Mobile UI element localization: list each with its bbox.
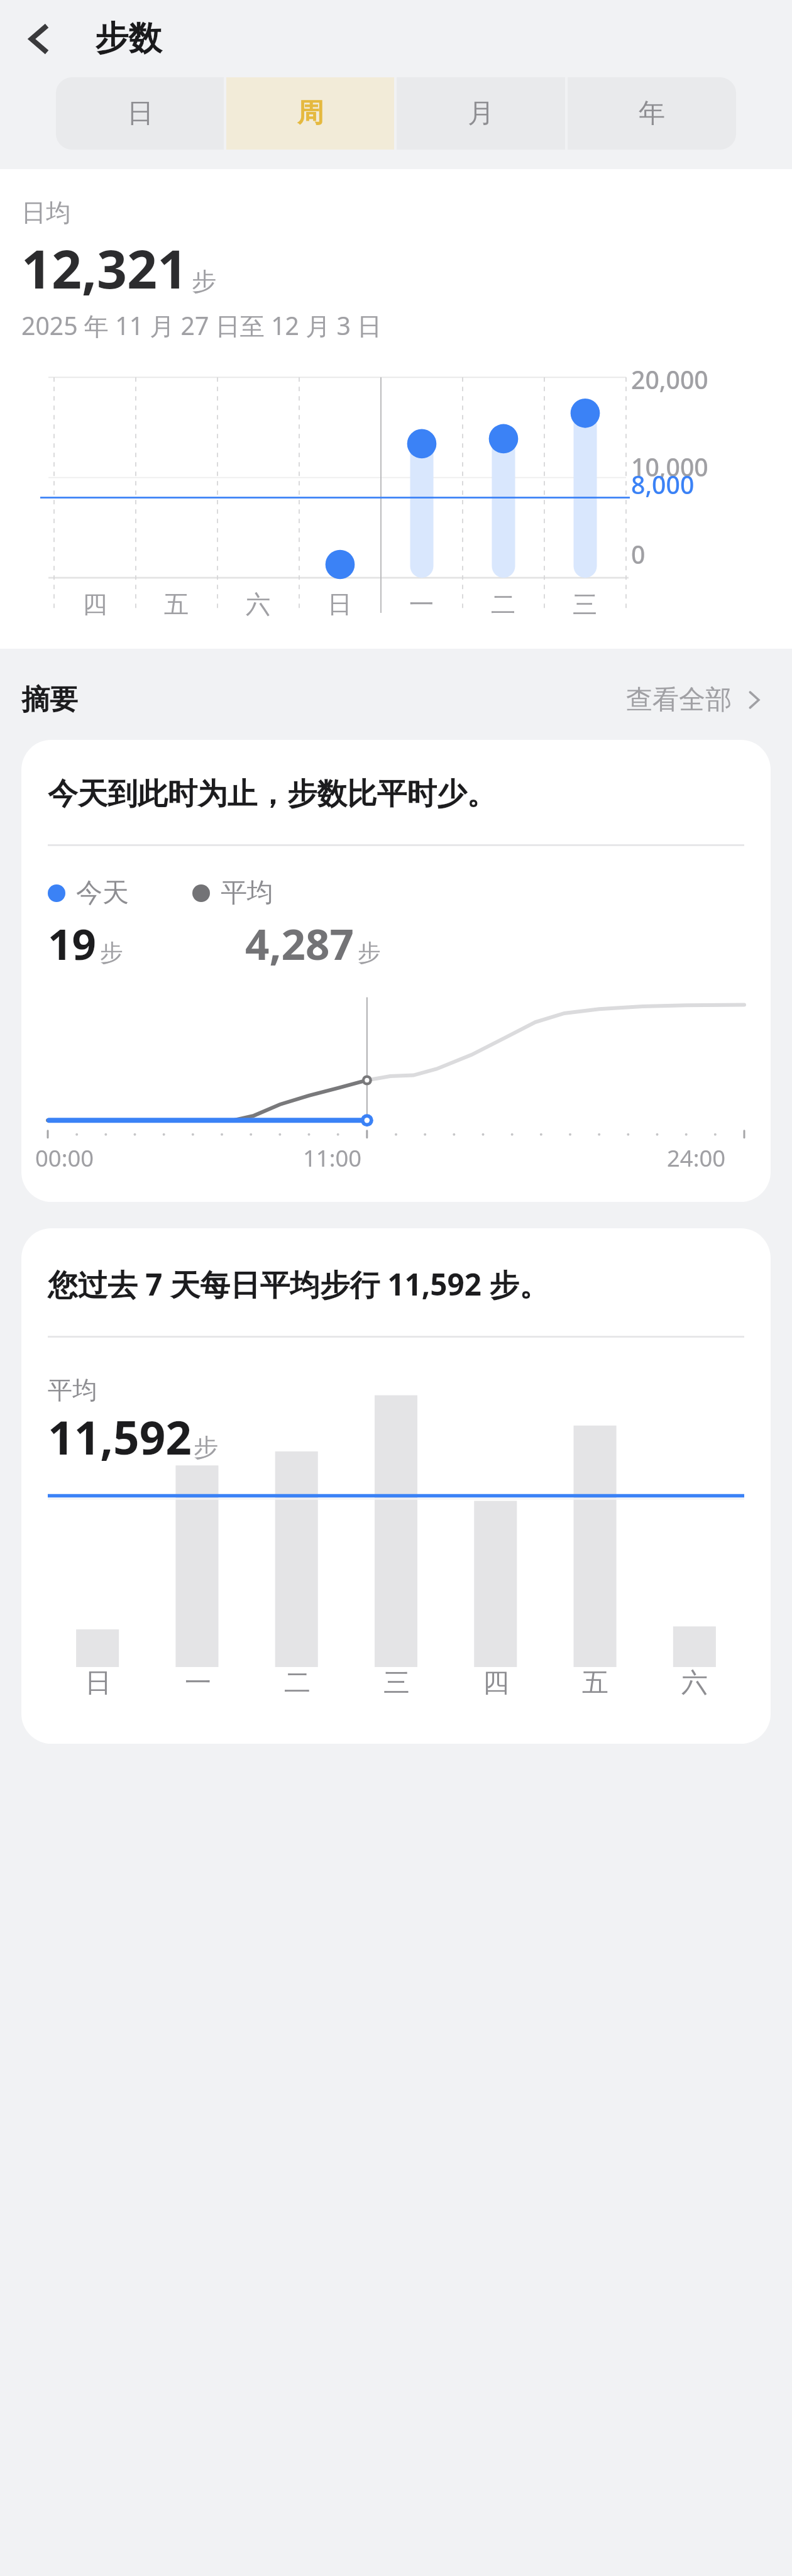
staticText: 二 (284, 1666, 311, 1700)
staticText: 摘要 (21, 682, 78, 717)
button[interactable]: Back (5, 4, 75, 74)
staticText: 19 (48, 915, 96, 972)
staticText: 五 (164, 589, 189, 620)
staticText: 4,287 (245, 915, 354, 972)
staticText: 日 (127, 97, 153, 130)
staticText: 步 (194, 1432, 219, 1463)
staticText: 四 (483, 1666, 509, 1700)
staticText: 步数 (95, 18, 162, 60)
button[interactable]: 日 (56, 77, 224, 150)
staticText: 步 (358, 938, 381, 967)
staticText: 步 (192, 266, 217, 297)
staticText: 日 (85, 1666, 111, 1700)
staticText: 10,000 (631, 450, 708, 483)
staticText: 日均 (21, 197, 71, 228)
staticText: 三 (383, 1666, 410, 1700)
staticText: 一 (185, 1666, 211, 1700)
staticText: 20,000 (631, 363, 708, 396)
button[interactable]: 周 (226, 77, 394, 150)
staticText: 六 (246, 589, 271, 620)
staticText: 8,000 (631, 468, 695, 501)
staticText: 11,592 (48, 1406, 192, 1468)
staticText: 24:00 (667, 1142, 726, 1174)
staticText: 11:00 (303, 1142, 362, 1174)
staticText: 年 (639, 97, 665, 130)
staticText: 您过去 7 天每日平均步行 11,592 步。 (48, 1263, 549, 1304)
staticText: 2025 年 11 月 27 日至 12 月 3 日 (21, 309, 382, 343)
staticText: 月 (468, 97, 494, 130)
staticText: 平均 (221, 876, 273, 910)
staticText: 六 (681, 1666, 708, 1700)
button[interactable]: 您过去 7 天每日平均步行 11,592 步。 (21, 1228, 771, 1744)
staticText: 日 (327, 589, 353, 620)
staticText: 今天到此时为止，步数比平时少。 (48, 775, 497, 813)
button[interactable]: 年 (568, 77, 736, 150)
button[interactable]: 查看全部 (619, 676, 771, 724)
staticText: 五 (582, 1666, 608, 1700)
staticText: 二 (491, 589, 516, 620)
staticText: 三 (573, 589, 598, 620)
staticText: 0 (631, 537, 646, 571)
staticText: 12,321 (21, 232, 188, 304)
staticText: 00:00 (35, 1142, 94, 1174)
button[interactable]: 今天到此时为止，步数比平时少。 (21, 740, 771, 1202)
button[interactable]: 月 (397, 77, 565, 150)
staticText: 今天 (76, 876, 129, 910)
staticText: 周 (297, 97, 324, 130)
staticText: 四 (82, 589, 107, 620)
staticText: 查看全部 (626, 683, 732, 717)
staticText: 步 (100, 938, 123, 967)
staticText: 平均 (48, 1375, 97, 1406)
staticText: 一 (409, 589, 434, 620)
